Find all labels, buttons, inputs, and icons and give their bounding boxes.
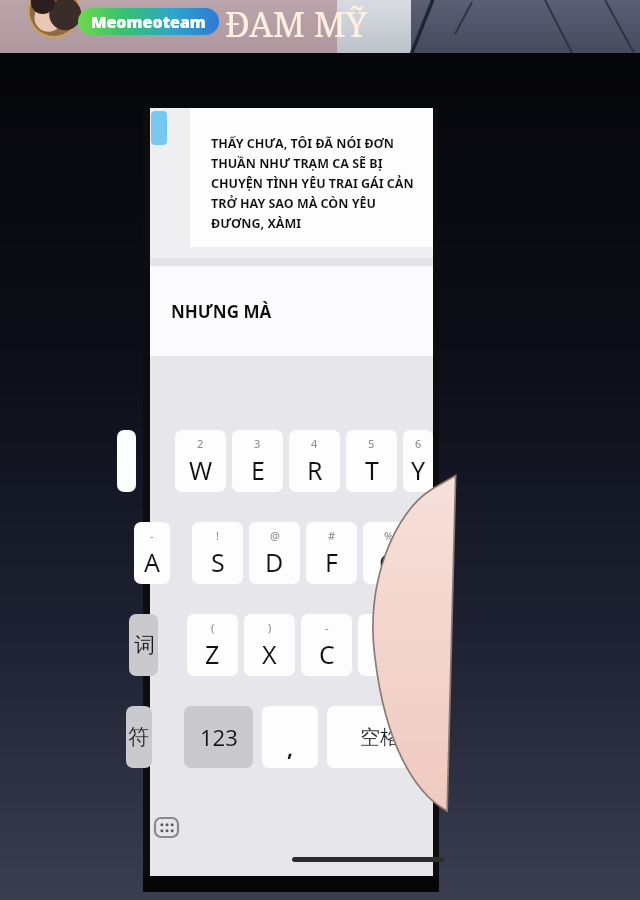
- button[interactable]: 词: [129, 614, 158, 676]
- button[interactable]: #: [306, 522, 357, 584]
- button[interactable]: 2: [175, 430, 226, 492]
- staticText: 123: [200, 722, 238, 752]
- staticText: X: [262, 637, 277, 671]
- button[interactable]: ,: [262, 706, 318, 768]
- staticText: ,: [287, 734, 293, 763]
- staticText: !: [216, 528, 219, 543]
- staticText: W: [189, 453, 213, 487]
- button[interactable]: [117, 430, 136, 492]
- staticText: 符: [128, 724, 149, 750]
- staticText: 空格: [360, 725, 400, 750]
- button[interactable]: 空格: [327, 706, 433, 768]
- staticText: 3: [254, 436, 261, 451]
- button[interactable]: NHƯNG MÀ: [150, 266, 433, 356]
- staticText: 6: [415, 436, 422, 451]
- button[interactable]: @: [249, 522, 300, 584]
- button[interactable]: 符: [126, 706, 152, 768]
- staticText: -: [325, 620, 329, 635]
- button[interactable]: 3: [232, 430, 283, 492]
- staticText: G: [379, 545, 398, 579]
- button[interactable]: ): [244, 614, 295, 676]
- button[interactable]: -: [134, 522, 170, 584]
- staticText: Y: [411, 453, 426, 487]
- staticText: ĐAM MỸ: [225, 1, 367, 47]
- staticText: C: [319, 637, 335, 671]
- staticText: R: [307, 453, 323, 487]
- staticText: NHƯNG MÀ: [171, 300, 272, 323]
- staticText: (: [211, 620, 215, 635]
- staticText: 5: [368, 436, 375, 451]
- staticText: -: [150, 528, 154, 543]
- button[interactable]: 123: [184, 706, 253, 768]
- staticText: 词: [134, 632, 155, 658]
- staticText: F: [325, 545, 338, 579]
- staticText: V: [376, 637, 392, 671]
- staticText: THẤY CHƯA, TÔI ĐÃ NÓI ĐƠN THUẦN NHƯ TRẠM…: [211, 135, 431, 232]
- staticText: ): [268, 620, 272, 635]
- button[interactable]: -: [301, 614, 352, 676]
- button[interactable]: Switch keyboard: [153, 816, 180, 839]
- button[interactable]: !: [192, 522, 243, 584]
- staticText: S: [211, 545, 225, 579]
- button[interactable]: Meomeoteam: [78, 8, 219, 35]
- staticText: A: [144, 545, 160, 579]
- staticText: Z: [205, 637, 220, 671]
- button[interactable]: 6: [403, 430, 433, 492]
- staticText: Meomeoteam: [91, 11, 206, 33]
- staticText: D: [265, 545, 284, 579]
- button[interactable]: -: [358, 614, 409, 676]
- staticText: %: [384, 528, 394, 543]
- staticText: #: [328, 528, 336, 543]
- button[interactable]: 4: [289, 430, 340, 492]
- staticText: T: [365, 453, 379, 487]
- button[interactable]: %: [363, 522, 414, 584]
- button[interactable]: 5: [346, 430, 397, 492]
- staticText: E: [251, 453, 265, 487]
- staticText: 2: [197, 436, 204, 451]
- staticText: 4: [311, 436, 318, 451]
- staticText: @: [270, 528, 280, 543]
- button[interactable]: (: [187, 614, 238, 676]
